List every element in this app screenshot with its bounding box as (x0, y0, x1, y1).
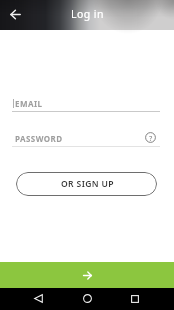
button[interactable]: Home (79, 290, 96, 307)
staticText: ? (149, 133, 153, 143)
button[interactable]: Back (30, 290, 47, 307)
staticText: Log in (71, 7, 104, 21)
staticText: PASSWORD (15, 133, 63, 144)
button[interactable]: Next (0, 262, 174, 288)
button[interactable]: Password help (145, 132, 156, 143)
staticText: EMAIL (15, 98, 43, 109)
button[interactable]: OR SIGN UP (16, 172, 157, 196)
button[interactable]: Back (5, 4, 25, 24)
staticText: OR SIGN UP (61, 178, 114, 190)
button[interactable]: Recent apps (126, 290, 143, 307)
